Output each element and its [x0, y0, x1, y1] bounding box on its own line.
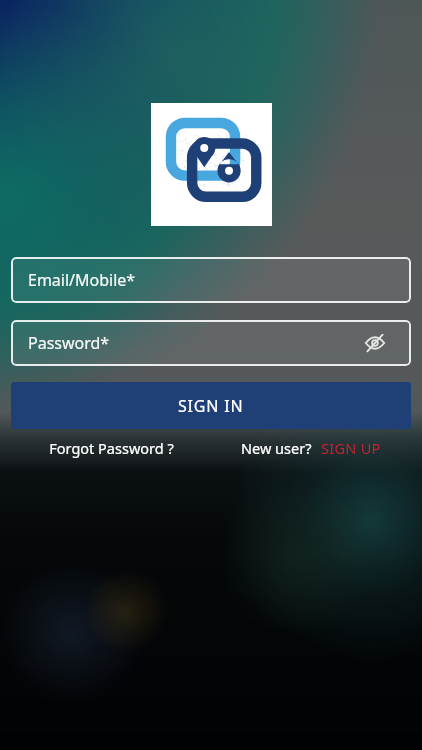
- staticText: New user?: [241, 438, 312, 458]
- button[interactable]: Password*: [11, 320, 411, 366]
- button[interactable]: Email/Mobile*: [11, 257, 411, 303]
- staticText: Email/Mobile*: [28, 269, 136, 291]
- button[interactable]: Forgot Password ?: [11, 438, 211, 458]
- button[interactable]: SIGN UP: [321, 438, 381, 458]
- button[interactable]: Show password: [363, 331, 387, 355]
- staticText: SIGN UP: [321, 438, 381, 458]
- staticText: Password*: [28, 332, 110, 354]
- staticText: SIGN IN: [178, 395, 244, 417]
- staticText: Forgot Password ?: [49, 438, 174, 458]
- button[interactable]: SIGN IN: [11, 382, 411, 429]
